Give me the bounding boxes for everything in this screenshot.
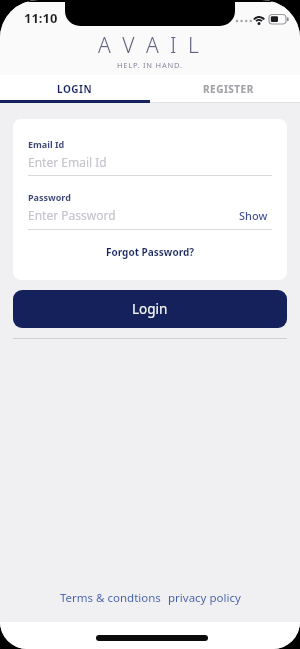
staticText: Terms & condtions: [60, 590, 161, 606]
staticText: HELP. IN HAND.: [117, 60, 183, 70]
staticText: Password: [28, 191, 71, 203]
staticText: Email Id: [28, 138, 65, 150]
staticText: Show: [239, 208, 268, 223]
staticText: REGISTER: [203, 82, 254, 96]
staticText: privacy policy: [168, 590, 241, 606]
button[interactable]: REGISTER: [150, 75, 300, 103]
button[interactable]: Forgot Password?: [106, 245, 195, 259]
staticText: Enter Email Id: [28, 154, 107, 170]
staticText: 11:10: [24, 9, 58, 27]
staticText: Forgot Password?: [106, 245, 195, 259]
button[interactable]: LOGIN: [0, 75, 150, 103]
staticText: LOGIN: [57, 82, 93, 96]
staticText: Login: [132, 300, 168, 318]
button[interactable]: Terms & condtions: [60, 590, 241, 606]
staticText: Enter Password: [28, 207, 116, 223]
button[interactable]: Login: [13, 290, 287, 328]
staticText: A V A I L: [98, 31, 202, 60]
button[interactable]: Show: [239, 208, 268, 223]
